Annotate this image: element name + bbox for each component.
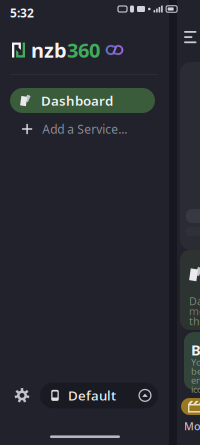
button[interactable]: Default <box>40 382 158 408</box>
button[interactable]: Movi <box>181 398 200 433</box>
staticText: en <box>191 374 200 386</box>
staticText: Dashboard <box>41 92 113 109</box>
staticText: Add a Service... <box>42 121 127 137</box>
staticText: Yo <box>191 356 200 368</box>
staticText: 5:32 <box>10 5 34 21</box>
staticText: nzb <box>31 37 67 63</box>
staticText: be <box>191 365 200 377</box>
button[interactable]: Settings <box>8 381 36 409</box>
staticText: Default <box>68 386 116 404</box>
staticText: ico <box>191 383 200 395</box>
button[interactable]: Dashboard <box>10 88 155 113</box>
staticText: Movi <box>184 419 200 433</box>
staticText: Das <box>189 294 200 308</box>
staticText: the <box>189 314 200 328</box>
staticText: me <box>189 304 200 318</box>
staticText: Be <box>191 340 200 359</box>
staticText: 360 <box>67 37 100 63</box>
button[interactable]: Menu <box>182 27 200 47</box>
button[interactable]: Add a Service... <box>10 117 155 141</box>
